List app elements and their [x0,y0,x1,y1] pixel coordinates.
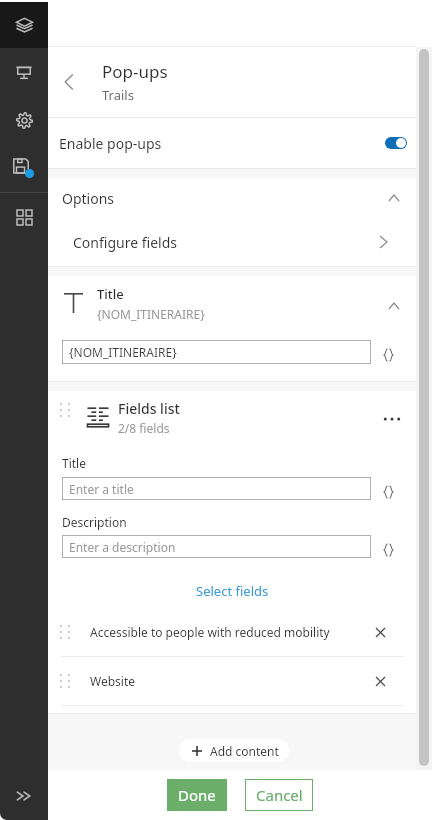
button[interactable]: Fields list [61,399,416,445]
button[interactable]: Enter a description [62,535,371,558]
button[interactable]: Widgets [0,193,48,241]
staticText: Options [62,189,115,208]
staticText: Enter a description [69,539,176,555]
button[interactable]: Add content [179,739,289,762]
staticText: Configure fields [73,233,177,252]
button[interactable]: Enable pop-ups [59,118,416,168]
button[interactable]: Accessible to people with reduced mobili… [61,608,391,656]
staticText: Fields list [118,399,180,418]
button[interactable]: More options [378,405,406,433]
button[interactable]: Expression [371,477,405,500]
staticText: Website [90,673,136,689]
button[interactable]: Back [48,47,416,117]
staticText: Add content [210,743,279,759]
staticText: {NOM_ITINERAIRE} [97,306,205,322]
button[interactable]: Done [167,779,227,811]
staticText: Select fields [196,582,269,600]
button[interactable]: Settings [0,96,48,144]
button[interactable]: Save [0,144,48,192]
button[interactable]: Page [0,48,48,96]
button[interactable]: Select fields [190,580,275,602]
staticText: Enable pop-ups [59,134,162,153]
button[interactable]: Remove Website [369,670,391,692]
staticText: Pop-ups [102,60,168,83]
button[interactable]: {NOM_ITINERAIRE} [62,340,371,364]
button[interactable]: Enter a title [62,477,371,500]
staticText: Enter a title [69,481,134,497]
staticText: Title [62,455,86,471]
button[interactable]: Enable pop-ups [385,137,407,149]
staticText: Done [178,785,216,805]
button[interactable]: Cancel [245,779,313,811]
button[interactable]: Remove Accessible to people with reduced… [369,621,391,643]
button[interactable]: Expression [371,535,405,558]
staticText: Title [97,285,124,303]
button[interactable]: Configure fields [73,218,416,266]
button[interactable]: Back [48,47,90,117]
button[interactable]: Expression [371,340,405,364]
button[interactable]: Title [64,285,416,323]
staticText: Cancel [256,785,303,805]
staticText: {NOM_ITINERAIRE} [69,344,177,360]
staticText: 2/8 fields [118,420,170,436]
staticText: Accessible to people with reduced mobili… [90,624,330,640]
button[interactable]: Website [61,657,391,705]
staticText: Description [62,514,127,530]
staticText: Trails [102,86,134,104]
button[interactable]: Options [62,178,416,218]
button[interactable]: Expand [0,772,48,820]
button[interactable]: Layers [0,2,48,48]
